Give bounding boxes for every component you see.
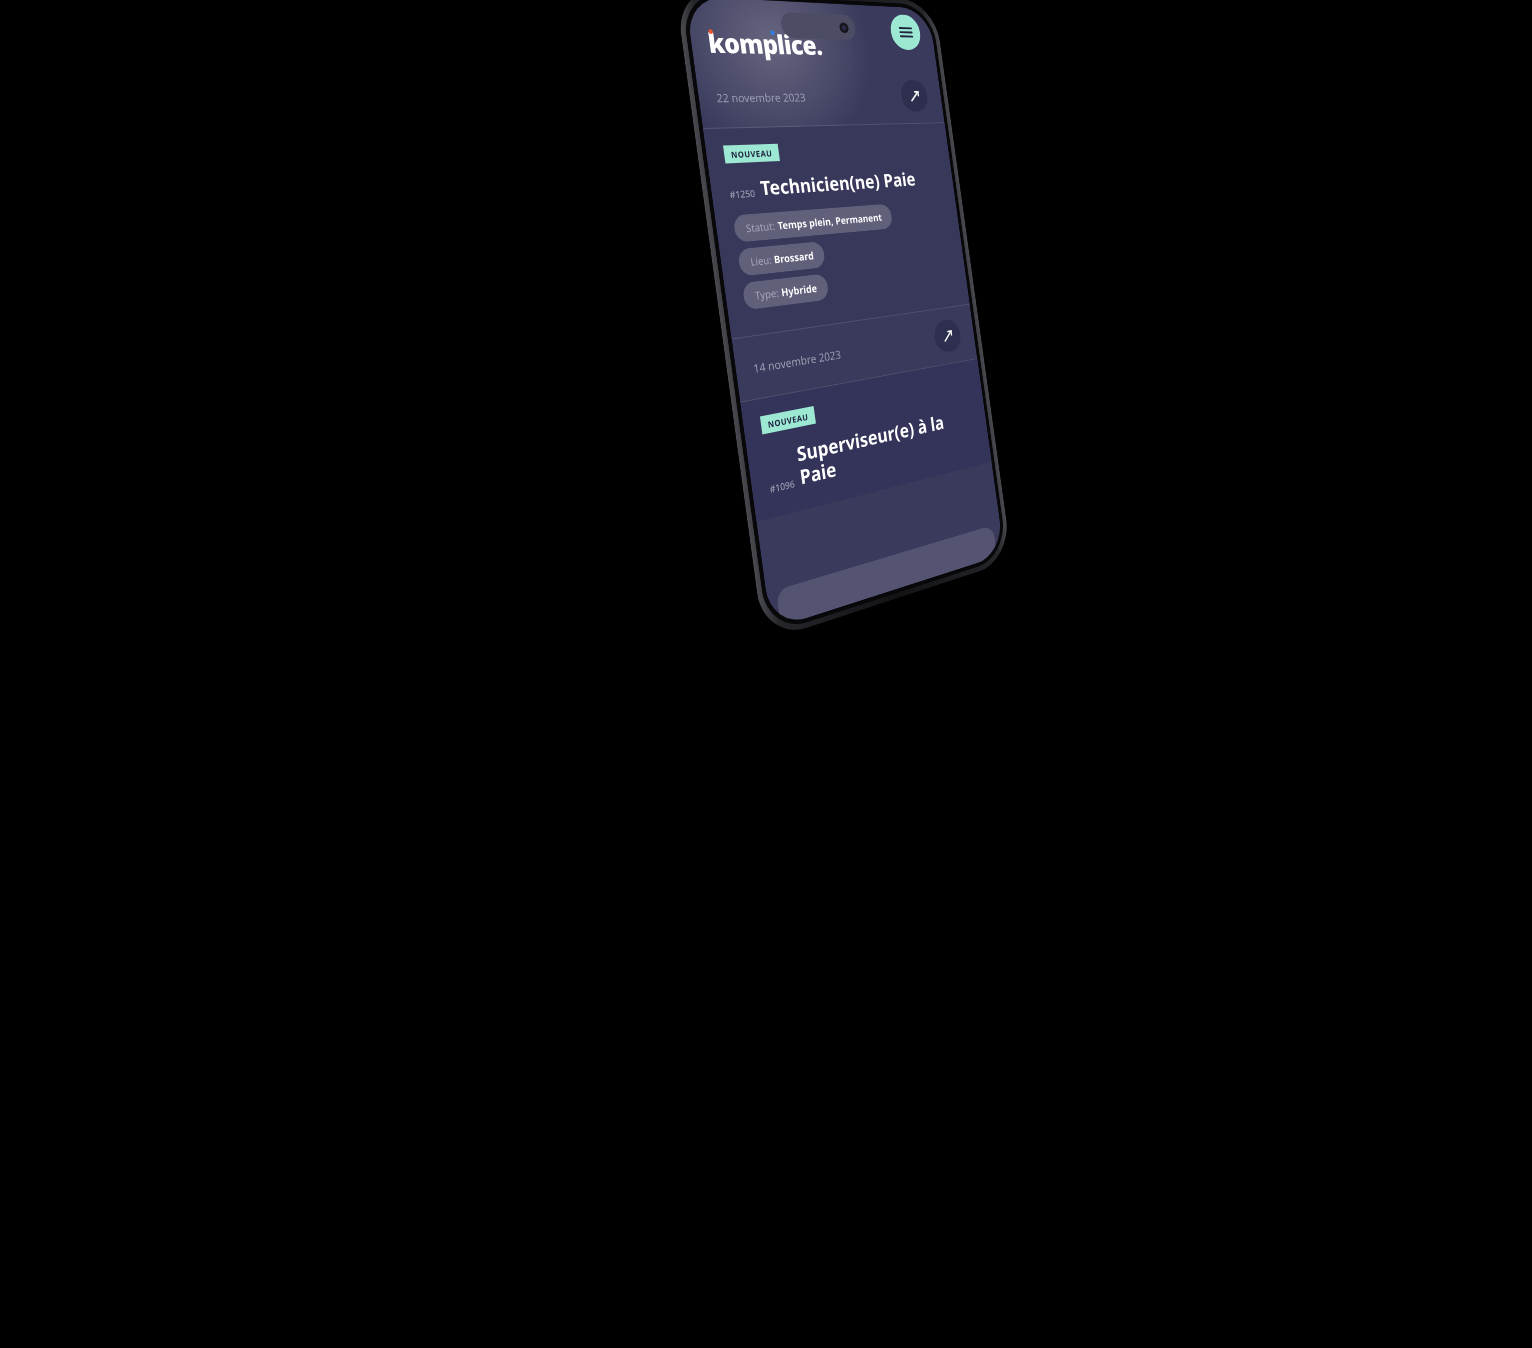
staticText: Brossard <box>773 248 815 266</box>
staticText: 22 novembre 2023 <box>715 89 807 105</box>
button[interactable]: komplice. <box>705 23 824 62</box>
button[interactable]: NOUVEAU <box>703 123 970 338</box>
staticText: 14 novembre 2023 <box>752 346 842 376</box>
staticText: Lieu: <box>749 252 775 269</box>
button[interactable]: Menu <box>888 14 923 50</box>
staticText: #1250 <box>729 186 756 200</box>
staticText: Superviseur(e) à la Paie <box>795 409 949 491</box>
staticText: Hybride <box>780 281 818 299</box>
button[interactable]: 22 novembre 2023 <box>694 66 944 128</box>
staticText: #1096 <box>769 476 796 495</box>
staticText: Temps plein, Permanent <box>777 210 883 233</box>
button[interactable]: Statut: <box>732 203 893 243</box>
staticText: NOUVEAU <box>730 147 773 160</box>
button[interactable]: Voir l'offre <box>932 318 962 354</box>
staticText: Technicien(ne) Paie <box>759 166 918 201</box>
button[interactable]: Lieu: <box>737 241 826 277</box>
staticText: NOUVEAU <box>767 410 809 430</box>
staticText: komplice. <box>705 23 824 62</box>
staticText: Statut: <box>745 218 779 235</box>
button[interactable]: 14 novembre 2023 <box>732 305 977 402</box>
button[interactable]: Type: <box>742 273 830 310</box>
button[interactable]: NOUVEAU <box>740 359 992 522</box>
staticText: Type: <box>754 285 782 303</box>
button[interactable]: Voir l'offre <box>899 80 930 112</box>
